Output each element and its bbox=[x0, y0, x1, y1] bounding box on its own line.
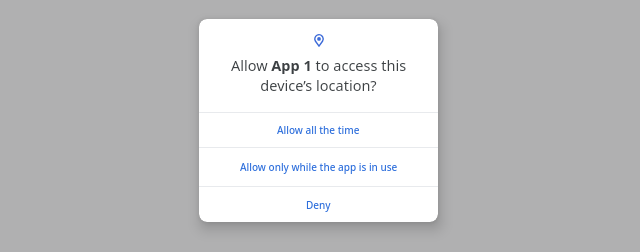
button[interactable]: Allow only while the app is in use bbox=[199, 148, 438, 186]
staticText: Allow App 1 to access this device’s loca… bbox=[199, 55, 438, 95]
button[interactable]: Allow all the time bbox=[199, 113, 438, 147]
staticText: Allow all the time bbox=[277, 123, 360, 137]
button[interactable]: Deny bbox=[199, 187, 438, 222]
staticText: Allow only while the app is in use bbox=[240, 160, 398, 174]
staticText: Deny bbox=[306, 198, 331, 212]
